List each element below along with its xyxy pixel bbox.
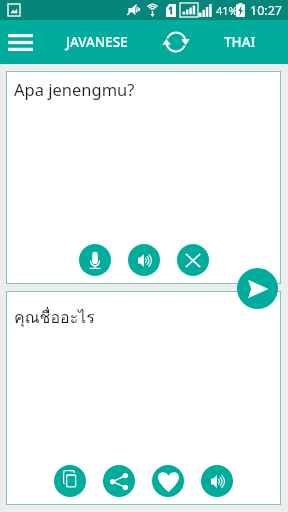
staticText: Apa jenengmu?: [14, 78, 135, 100]
button[interactable]: Listen: [201, 465, 233, 497]
staticText: THAI: [224, 33, 256, 51]
button[interactable]: Speak: [79, 244, 111, 276]
button[interactable]: Translate: [237, 268, 278, 309]
button[interactable]: Menu: [0, 20, 40, 64]
staticText: 10:27: [250, 2, 282, 19]
button[interactable]: THAI: [198, 20, 282, 64]
button[interactable]: Copy: [54, 465, 86, 497]
button[interactable]: Clear: [177, 244, 209, 276]
button[interactable]: Favorite: [152, 465, 184, 497]
button[interactable]: Swap languages: [154, 20, 198, 64]
staticText: JAVANESE: [66, 33, 128, 51]
button[interactable]: Share: [103, 465, 135, 497]
button[interactable]: Listen: [128, 244, 160, 276]
staticText: คุณชื่ออะไร: [14, 305, 95, 330]
staticText: 41%: [216, 3, 238, 18]
button[interactable]: JAVANESE: [44, 20, 150, 64]
